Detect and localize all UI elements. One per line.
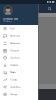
staticText: Listen Later [10, 57, 20, 59]
staticText: Send to Home [10, 86, 21, 88]
staticText: Notifications [10, 42, 20, 44]
staticText: Trending [10, 79, 17, 81]
staticText: 15 Followers [3, 20, 12, 22]
button[interactable]: Listen Later [0, 54, 38, 61]
button[interactable]: Send to Home [0, 83, 38, 91]
staticText: Playlists [10, 71, 16, 73]
button[interactable]: Notifications [0, 40, 38, 47]
staticText: Settings [10, 93, 17, 95]
button[interactable]: Trending [0, 76, 38, 83]
button[interactable]: Playlists [0, 69, 38, 76]
staticText: Downloads [10, 64, 18, 66]
staticText: New Threads [10, 35, 20, 37]
button[interactable]: New Threads [0, 32, 38, 40]
button[interactable]: Feed [0, 25, 38, 32]
staticText: Categories [10, 49, 19, 52]
button[interactable]: Settings [0, 91, 38, 98]
button[interactable]: Search [0, 0, 52, 11]
staticText: Feed [10, 28, 14, 30]
button[interactable]: Categories [0, 47, 38, 54]
staticText: Screenshot Man [3, 18, 18, 20]
button[interactable]: Downloads [0, 61, 38, 69]
